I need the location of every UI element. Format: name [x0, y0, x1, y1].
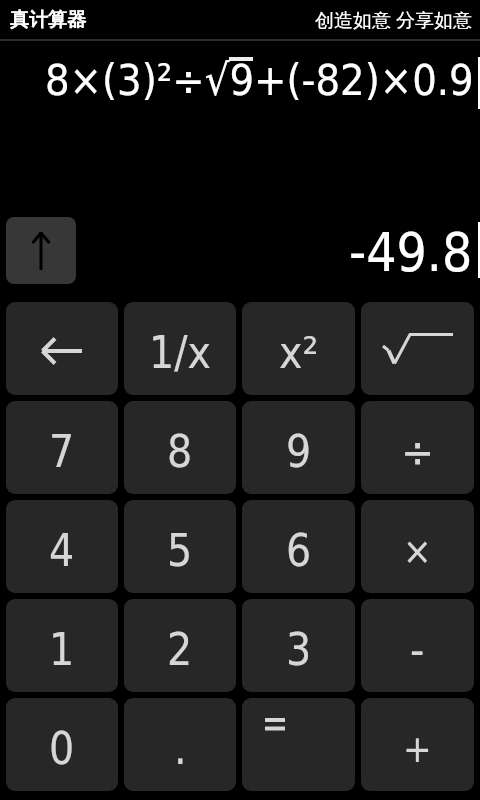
- button[interactable]: 7: [6, 401, 118, 494]
- staticText: 9: [286, 426, 312, 477]
- button[interactable]: 1: [6, 599, 118, 692]
- staticText: 4: [49, 525, 75, 576]
- staticText: 真计算器: [10, 8, 86, 32]
- button[interactable]: 6: [242, 500, 355, 593]
- button[interactable]: 1/x: [124, 302, 236, 395]
- button[interactable]: 5: [124, 500, 236, 593]
- staticText: 8: [167, 426, 193, 477]
- staticText: x²: [279, 327, 319, 378]
- button[interactable]: -: [361, 599, 474, 692]
- staticText: -: [410, 624, 425, 675]
- staticText: ÷: [401, 426, 435, 477]
- staticText: 8×(3)²÷√9+(-82)×0.9: [45, 55, 474, 105]
- staticText: 1/x: [149, 327, 211, 378]
- staticText: ×: [403, 529, 432, 573]
- staticText: +: [403, 727, 432, 771]
- button[interactable]: [242, 698, 355, 791]
- staticText: -49.8: [349, 222, 473, 284]
- staticText: 创造如意 分享如意: [315, 7, 472, 33]
- staticText: 7: [49, 426, 75, 477]
- button[interactable]: ×: [361, 500, 474, 593]
- staticText: 3: [286, 624, 312, 675]
- button[interactable]: 0: [6, 698, 118, 791]
- button[interactable]: 8: [124, 401, 236, 494]
- button[interactable]: .: [124, 698, 236, 791]
- button[interactable]: +: [361, 698, 474, 791]
- staticText: 1: [49, 624, 75, 675]
- button[interactable]: 2: [124, 599, 236, 692]
- button[interactable]: 9: [242, 401, 355, 494]
- button[interactable]: [361, 302, 474, 395]
- button[interactable]: [6, 217, 76, 284]
- button[interactable]: x²: [242, 302, 355, 395]
- button[interactable]: [6, 302, 118, 395]
- button[interactable]: 3: [242, 599, 355, 692]
- staticText: .: [174, 723, 187, 774]
- button[interactable]: ÷: [361, 401, 474, 494]
- staticText: 0: [49, 723, 75, 774]
- staticText: 2: [167, 624, 193, 675]
- staticText: 6: [286, 525, 312, 576]
- staticText: 5: [167, 525, 193, 576]
- button[interactable]: 4: [6, 500, 118, 593]
